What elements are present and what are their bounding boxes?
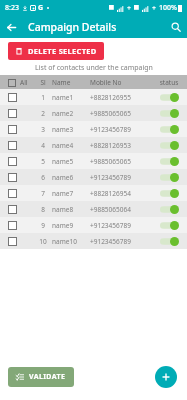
button[interactable]: Toggle status [160, 173, 179, 182]
staticText: 1 [34, 93, 52, 102]
button[interactable]: Select name3 [8, 125, 17, 134]
button[interactable]: All [0, 75, 34, 89]
staticText: 4 [34, 141, 52, 150]
button[interactable]: Select name7 [8, 189, 17, 198]
staticText: All [20, 78, 28, 87]
button[interactable]: Toggle status [160, 221, 179, 230]
staticText: 5 [34, 157, 52, 166]
staticText: 8:23 [5, 3, 19, 13]
button[interactable]: Select name7 [0, 185, 187, 201]
button[interactable]: Search [165, 16, 187, 38]
staticText: +9123456789 [90, 125, 151, 134]
staticText: name8 [52, 205, 90, 214]
button[interactable]: Toggle status [160, 109, 179, 118]
button[interactable]: DELETE SELECTED [8, 42, 104, 60]
staticText: Mobile No [90, 78, 151, 87]
button[interactable]: Select name5 [0, 153, 187, 169]
staticText: +9885065065 [90, 157, 151, 166]
staticText: +9885065064 [90, 205, 151, 214]
staticText: 9 [34, 221, 52, 230]
button[interactable]: Toggle status [160, 237, 179, 246]
staticText: +8828126955 [90, 93, 151, 102]
staticText: Name [52, 78, 90, 87]
staticText: 8 [34, 205, 52, 214]
staticText: 2 [34, 109, 52, 118]
button[interactable]: Toggle status [160, 93, 179, 102]
staticText: +9123456789 [90, 221, 151, 230]
staticText: Sl [34, 78, 52, 87]
button[interactable]: Select name1 [0, 89, 187, 105]
button[interactable]: Back [0, 16, 22, 38]
button[interactable]: Select name10 [8, 237, 17, 246]
button[interactable]: Toggle status [160, 125, 179, 134]
staticText: name5 [52, 157, 90, 166]
staticText: 100% [159, 3, 177, 13]
button[interactable]: Toggle status [160, 189, 179, 198]
button[interactable]: Select name6 [8, 173, 17, 182]
button[interactable]: Toggle status [160, 141, 179, 150]
staticText: 3 [34, 125, 52, 134]
button[interactable]: Toggle status [160, 205, 179, 214]
button[interactable]: Select name8 [0, 201, 187, 217]
button[interactable]: Select name9 [8, 221, 17, 230]
staticText: +9123456789 [90, 173, 151, 182]
staticText: name10 [52, 237, 90, 246]
staticText: DELETE SELECTED [28, 46, 97, 56]
staticText: name7 [52, 189, 90, 198]
staticText: status [151, 78, 187, 87]
staticText: Campaign Details [28, 20, 117, 34]
button[interactable]: Select name2 [0, 105, 187, 121]
staticText: 6 [34, 173, 52, 182]
staticText: VALIDATE [29, 372, 66, 382]
staticText: 7 [34, 189, 52, 198]
staticText: 10 [34, 237, 52, 246]
staticText: +9885065065 [90, 109, 151, 118]
button[interactable]: Select name10 [0, 233, 187, 249]
button[interactable]: Select name9 [0, 217, 187, 233]
button[interactable]: VALIDATE [8, 367, 74, 387]
staticText: name9 [52, 221, 90, 230]
staticText: G [38, 3, 44, 13]
staticText: +9123456789 [90, 237, 151, 246]
button[interactable]: Select name2 [8, 109, 17, 118]
button[interactable]: Toggle status [160, 157, 179, 166]
button[interactable]: Select name1 [8, 93, 17, 102]
button[interactable]: Add contact [155, 366, 177, 388]
button[interactable]: Select name6 [0, 169, 187, 185]
staticText: name1 [52, 93, 90, 102]
staticText: +8828126954 [90, 189, 151, 198]
button[interactable]: Select name4 [0, 137, 187, 153]
button[interactable]: Select name3 [0, 121, 187, 137]
button[interactable]: Select name4 [8, 141, 17, 150]
staticText: name2 [52, 109, 90, 118]
button[interactable]: Select name8 [8, 205, 17, 214]
button[interactable]: Select name5 [8, 157, 17, 166]
staticText: List of contacts under the campaign [35, 63, 153, 73]
staticText: name3 [52, 125, 90, 134]
staticText: name6 [52, 173, 90, 182]
staticText: +8828126953 [90, 141, 151, 150]
staticText: name4 [52, 141, 90, 150]
